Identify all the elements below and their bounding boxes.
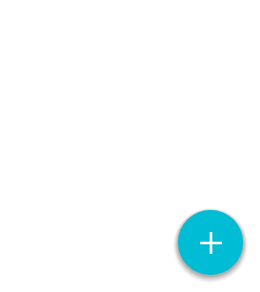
button[interactable]: Add: [178, 210, 243, 275]
